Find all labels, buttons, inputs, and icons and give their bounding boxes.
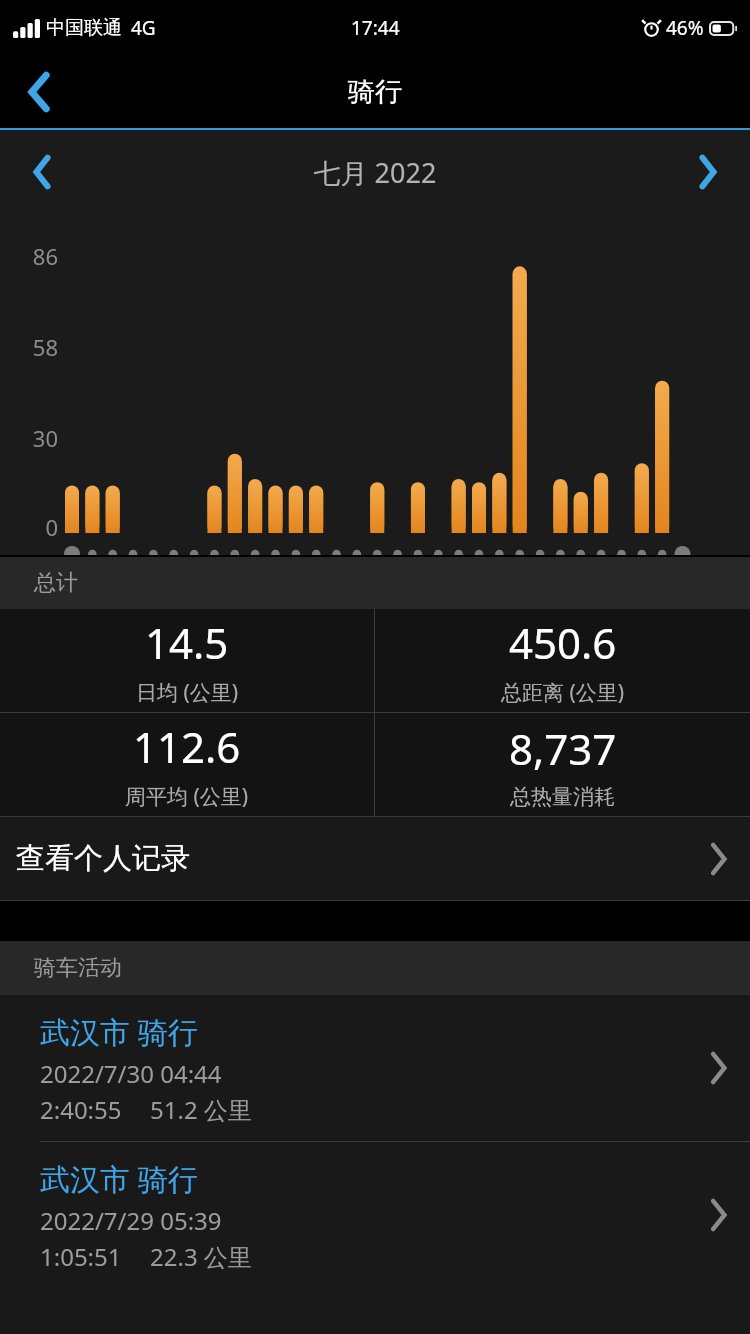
staticText: 总热量消耗 (510, 784, 615, 810)
staticText: 日均 (公里) (136, 678, 239, 707)
button[interactable]: 450.6 (375, 609, 750, 712)
staticText: 30 (0, 423, 58, 453)
staticText: 总计 (34, 569, 78, 597)
staticText: 8,737 (509, 720, 617, 777)
staticText: 武汉市 骑行 (40, 1158, 198, 1199)
staticText: 总距离 (公里) (501, 678, 625, 707)
button[interactable]: 查看个人记录 (0, 817, 750, 900)
staticText: 46% (666, 15, 704, 41)
staticText: 2022/7/30 04:44 (40, 1057, 222, 1090)
staticText: 17:44 (351, 15, 400, 41)
staticText: 58 (0, 332, 58, 362)
staticText: 中国联通 (46, 16, 122, 40)
staticText: 查看个人记录 (16, 840, 190, 877)
button[interactable]: Back (0, 55, 78, 128)
staticText: 86 (0, 241, 58, 271)
staticText: 骑车活动 (34, 954, 122, 982)
staticText: 七月 2022 (84, 154, 666, 191)
staticText: 4G (131, 15, 156, 41)
button[interactable]: Next month (666, 130, 750, 214)
staticText: 112.6 (133, 718, 241, 775)
staticText: 14.5 (145, 614, 229, 671)
button[interactable]: 8,737 (375, 713, 750, 816)
staticText: 2022/7/29 05:39 (40, 1204, 222, 1237)
staticText: 450.6 (509, 614, 617, 671)
staticText: 22.3 公里 (150, 1240, 252, 1273)
staticText: 周平均 (公里) (125, 782, 249, 811)
staticText: 0 (0, 512, 58, 542)
button[interactable]: 武汉市 骑行 (0, 995, 750, 1141)
staticText: 骑行 (348, 75, 402, 109)
staticText: 7/1 (54, 566, 86, 595)
button[interactable]: 武汉市 骑行 (0, 1142, 750, 1288)
staticText: 武汉市 骑行 (40, 1011, 198, 1052)
staticText: 1:05:51 (40, 1240, 122, 1273)
button[interactable]: 112.6 (0, 713, 374, 816)
staticText: 2:40:55 (40, 1093, 122, 1126)
button[interactable]: Previous month (0, 130, 84, 214)
staticText: 51.2 公里 (150, 1093, 252, 1126)
button[interactable]: 14.5 (0, 609, 374, 712)
